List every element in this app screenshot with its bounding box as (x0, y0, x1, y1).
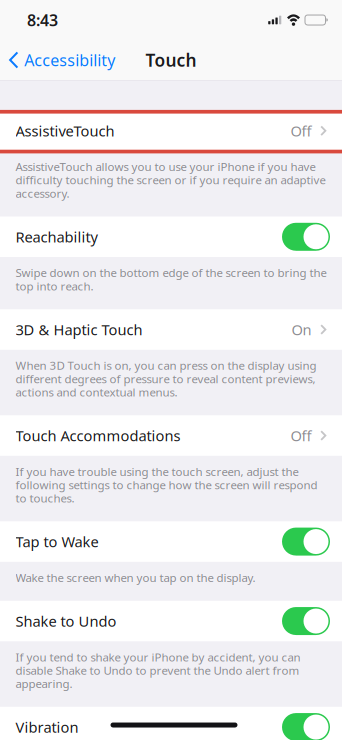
staticText: 8:43 (27, 9, 58, 31)
staticText: If you tend to shake your iPhone by acci… (15, 650, 300, 690)
button[interactable]: On (282, 528, 330, 556)
staticText: Reachability (15, 227, 97, 246)
staticText: Vibration (15, 717, 78, 737)
button[interactable]: On (282, 713, 330, 740)
staticText: Wake the screen when you tap on the disp… (15, 571, 255, 584)
button[interactable]: Touch Accommodations (0, 415, 342, 456)
staticText: On (291, 320, 311, 339)
staticText: If you have trouble using the touch scre… (15, 465, 317, 505)
staticText: Off (290, 426, 311, 445)
staticText: Touch (145, 48, 196, 71)
button[interactable]: On (282, 607, 330, 635)
staticText: When 3D Touch is on, you can press on th… (15, 359, 316, 399)
staticText: Accessibility (24, 49, 115, 71)
button[interactable]: On (282, 223, 330, 251)
staticText: 3D & Haptic Touch (15, 320, 142, 339)
button[interactable]: Accessibility (0, 40, 121, 80)
button[interactable]: 3D & Haptic Touch (0, 309, 342, 350)
button[interactable]: AssistiveTouch (0, 110, 342, 151)
staticText: Shake to Undo (15, 611, 116, 631)
staticText: AssistiveTouch allows you to use your iP… (15, 160, 325, 200)
staticText: Tap to Wake (15, 532, 98, 551)
staticText: Touch Accommodations (15, 426, 180, 445)
staticText: Swipe down on the bottom edge of the scr… (15, 266, 326, 292)
staticText: AssistiveTouch (15, 121, 114, 140)
staticText: Off (290, 121, 311, 140)
